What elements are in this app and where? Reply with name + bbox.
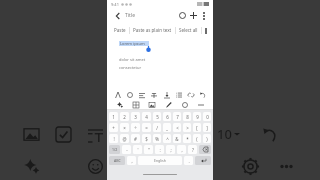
button[interactable]: # bbox=[131, 134, 140, 143]
button[interactable]: 7 bbox=[173, 112, 181, 121]
button[interactable]: English bbox=[138, 156, 182, 165]
button[interactable]: Table bbox=[131, 100, 140, 109]
staticText: [ bbox=[196, 125, 198, 131]
button[interactable]: Undo bbox=[259, 123, 281, 145]
staticText: . bbox=[188, 158, 190, 164]
button[interactable]: , bbox=[127, 156, 136, 165]
staticText: 3 bbox=[134, 114, 137, 120]
button[interactable]: Emoji bbox=[84, 155, 106, 177]
button[interactable]: Paste bbox=[111, 26, 129, 34]
staticText: 10 bbox=[217, 125, 232, 143]
button[interactable]: ( bbox=[193, 134, 201, 143]
button[interactable]: : bbox=[155, 145, 164, 154]
button[interactable]: = bbox=[142, 123, 151, 132]
staticText: ) bbox=[206, 136, 208, 142]
button[interactable]: Paste as plain text bbox=[130, 26, 175, 34]
button[interactable]: Align bbox=[149, 90, 158, 99]
button[interactable]: % bbox=[153, 134, 161, 143]
button[interactable]: Backspace bbox=[199, 145, 211, 154]
button[interactable]: Collapse bbox=[196, 100, 205, 109]
staticText: * bbox=[186, 136, 189, 142]
button[interactable]: Photo bbox=[147, 100, 156, 109]
button[interactable]: Attach bbox=[115, 100, 124, 109]
button[interactable]: ? bbox=[188, 145, 197, 154]
button[interactable]: × bbox=[120, 123, 129, 132]
button[interactable]: Underline bbox=[137, 90, 146, 99]
button[interactable]: Italic bbox=[125, 90, 134, 99]
button[interactable]: " bbox=[144, 145, 153, 154]
button[interactable]: Settings bbox=[239, 155, 261, 177]
button[interactable]: Assist bbox=[20, 155, 42, 177]
button[interactable]: Link bbox=[186, 90, 195, 99]
button[interactable]: ' bbox=[133, 145, 142, 154]
button[interactable]: 9 bbox=[193, 112, 201, 121]
button[interactable]: _ bbox=[163, 123, 171, 132]
button[interactable]: @ bbox=[120, 134, 129, 143]
staticText: Select all bbox=[179, 27, 198, 33]
button[interactable]: Undo bbox=[198, 90, 207, 99]
button[interactable]: 3 bbox=[131, 112, 140, 121]
button[interactable]: More bbox=[202, 27, 209, 34]
button[interactable]: ABC bbox=[109, 156, 125, 165]
button[interactable]: 1 bbox=[109, 112, 118, 121]
button[interactable]: 8 bbox=[183, 112, 191, 121]
staticText: : bbox=[159, 147, 161, 153]
button[interactable]: More options bbox=[199, 11, 208, 20]
button[interactable]: ; bbox=[166, 145, 175, 154]
button[interactable]: > bbox=[183, 123, 191, 132]
staticText: < bbox=[176, 125, 179, 131]
button[interactable]: $ bbox=[142, 134, 151, 143]
staticText: Lorem ipsum bbox=[120, 41, 145, 46]
button[interactable]: Bold bbox=[113, 90, 122, 99]
button[interactable]: + bbox=[109, 123, 118, 132]
button[interactable]: Pin bbox=[177, 10, 188, 21]
button[interactable]: Text format bbox=[84, 123, 106, 145]
staticText: 7 bbox=[176, 114, 179, 120]
staticText: Title bbox=[125, 12, 135, 19]
button[interactable]: - bbox=[122, 145, 131, 154]
button[interactable]: * bbox=[183, 134, 191, 143]
button[interactable]: [ bbox=[193, 123, 201, 132]
button[interactable]: ! bbox=[109, 134, 118, 143]
button[interactable]: < bbox=[173, 123, 181, 132]
button[interactable]: 6 bbox=[163, 112, 171, 121]
staticText: ] bbox=[206, 125, 208, 131]
staticText: > bbox=[186, 125, 189, 131]
staticText: & bbox=[175, 136, 179, 142]
button[interactable]: / bbox=[153, 123, 161, 132]
button[interactable]: List bbox=[174, 90, 183, 99]
button[interactable]: 2 bbox=[120, 112, 129, 121]
button[interactable]: Back bbox=[112, 10, 123, 21]
staticText: $ bbox=[145, 136, 148, 142]
button[interactable]: Image bbox=[20, 123, 42, 145]
button[interactable]: ] bbox=[203, 123, 211, 132]
button[interactable]: Indent bbox=[162, 90, 171, 99]
button[interactable]: ^ bbox=[163, 134, 171, 143]
button[interactable]: Enter bbox=[195, 156, 211, 165]
button[interactable]: Select all bbox=[176, 26, 201, 34]
button[interactable]: Checklist bbox=[52, 123, 74, 145]
button[interactable]: 10 bbox=[217, 123, 251, 145]
button[interactable]: Draw bbox=[164, 100, 173, 109]
button[interactable]: 4 bbox=[142, 112, 151, 121]
button[interactable]: & bbox=[173, 134, 181, 143]
staticText: # bbox=[134, 136, 137, 142]
button[interactable]: Add bbox=[188, 10, 199, 21]
staticText: × bbox=[123, 125, 126, 131]
staticText: ( bbox=[196, 136, 198, 142]
button[interactable]: ) bbox=[203, 134, 211, 143]
button[interactable]: 5 bbox=[153, 112, 161, 121]
button[interactable]: Record bbox=[180, 100, 189, 109]
button[interactable]: 1/2 bbox=[109, 145, 120, 154]
staticText: _ bbox=[166, 125, 168, 131]
button[interactable]: More options bbox=[275, 155, 297, 177]
button[interactable]: , bbox=[177, 145, 186, 154]
button[interactable]: . bbox=[184, 156, 193, 165]
staticText: = bbox=[145, 125, 148, 131]
staticText: " bbox=[148, 147, 150, 153]
button[interactable]: ÷ bbox=[131, 123, 140, 132]
staticText: 4 bbox=[145, 114, 148, 120]
staticText: 9 bbox=[196, 114, 199, 120]
button[interactable]: 0 bbox=[203, 112, 211, 121]
staticText: 1/2 bbox=[112, 147, 118, 152]
